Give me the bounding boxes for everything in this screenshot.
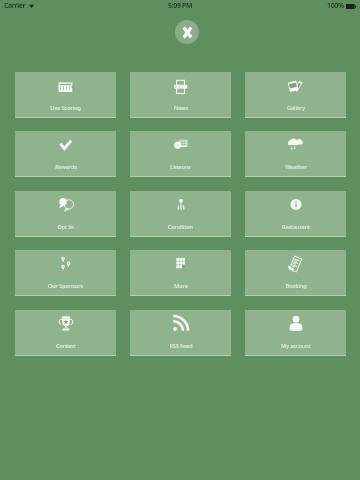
staticText: Rewards	[55, 163, 77, 170]
button[interactable]: Rewards	[15, 131, 116, 177]
staticText: 5:09 PM	[168, 1, 193, 11]
button[interactable]: Close	[175, 20, 199, 44]
button[interactable]: Restaurant	[245, 191, 346, 237]
button[interactable]: Lessons	[130, 131, 231, 177]
button[interactable]: Gallery	[245, 72, 346, 118]
button[interactable]: Booking	[245, 250, 346, 296]
staticText: Lessons	[170, 163, 191, 170]
staticText: RSS Feed	[169, 342, 193, 349]
staticText: Our Sponsors	[48, 282, 83, 289]
staticText: Carrier	[4, 1, 26, 11]
staticText: Restaurant	[282, 223, 310, 230]
button[interactable]: RSS Feed	[130, 310, 231, 356]
button[interactable]: News	[130, 72, 231, 118]
button[interactable]: More	[130, 250, 231, 296]
button[interactable]: Condition	[130, 191, 231, 237]
staticText: News	[174, 104, 188, 111]
staticText: Live Scoring	[50, 104, 81, 111]
button[interactable]: My account	[245, 310, 346, 356]
button[interactable]: Contest	[15, 310, 116, 356]
button[interactable]: Weather	[245, 131, 346, 177]
staticText: Weather	[285, 163, 307, 170]
staticText: 100%	[327, 1, 344, 11]
button[interactable]: Live Scoring	[15, 72, 116, 118]
staticText: Contest	[56, 342, 76, 349]
staticText: Opt In	[57, 223, 74, 230]
staticText: More	[174, 282, 188, 289]
staticText: Booking	[285, 282, 307, 289]
staticText: Gallery	[287, 104, 305, 111]
button[interactable]: Opt In	[15, 191, 116, 237]
staticText: My account	[281, 342, 311, 349]
staticText: Condition	[168, 223, 193, 230]
button[interactable]: Our Sponsors	[15, 250, 116, 296]
